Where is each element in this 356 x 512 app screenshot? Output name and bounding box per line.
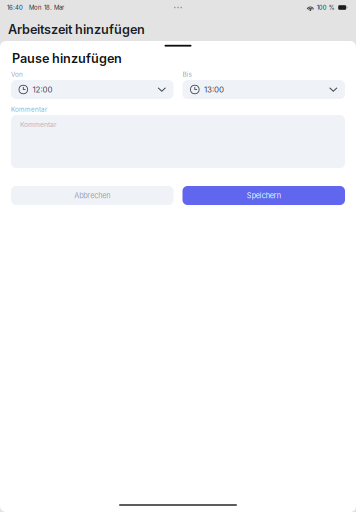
staticText: Abbrechen xyxy=(74,191,110,200)
button[interactable]: Speichern xyxy=(182,186,345,205)
staticText: 12:00 xyxy=(33,85,53,94)
button[interactable]: 13:00 xyxy=(182,80,345,99)
staticText: Mon 18. Mar xyxy=(29,4,64,11)
staticText: 16:40 xyxy=(7,4,23,11)
staticText: Von xyxy=(11,71,23,78)
staticText: Bis xyxy=(182,71,191,78)
staticText: Kommentar xyxy=(20,120,57,129)
button[interactable]: 12:00 xyxy=(11,80,173,99)
staticText: Speichern xyxy=(247,191,281,200)
staticText: Kommentar xyxy=(11,106,47,113)
button[interactable]: Abbrechen xyxy=(11,186,173,205)
staticText: 13:00 xyxy=(204,85,224,94)
staticText: Pause hinzufügen xyxy=(12,51,122,66)
staticText: Arbeitszeit hinzufügen xyxy=(8,22,145,37)
staticText: 100 % xyxy=(317,4,335,11)
